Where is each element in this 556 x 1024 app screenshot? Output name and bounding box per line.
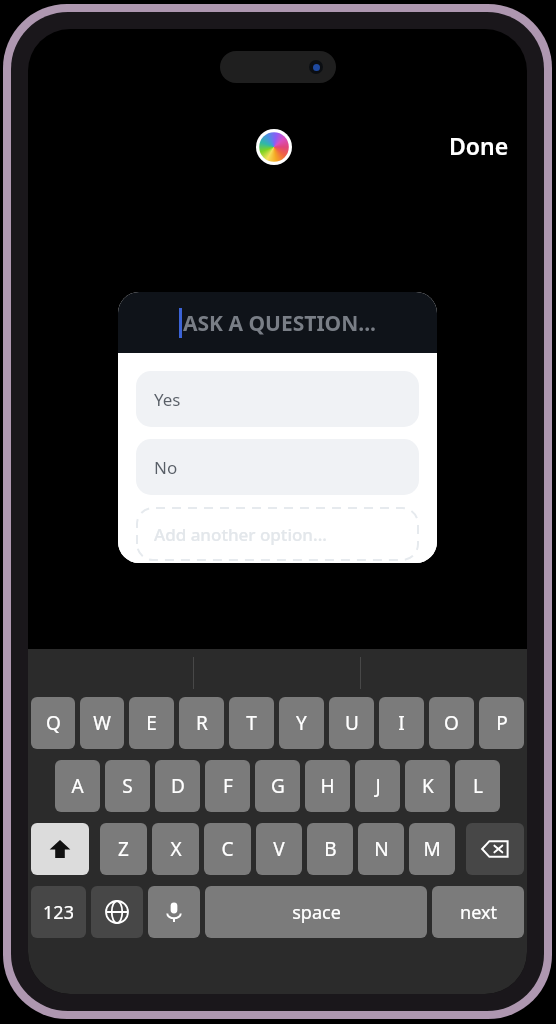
staticText: J bbox=[375, 773, 381, 799]
button[interactable]: Y bbox=[279, 697, 324, 749]
button[interactable]: next bbox=[432, 886, 524, 938]
staticText: T bbox=[246, 710, 257, 736]
button[interactable]: G bbox=[255, 760, 300, 812]
staticText: L bbox=[473, 773, 483, 799]
button[interactable]: Pick color bbox=[256, 129, 292, 165]
staticText: W bbox=[93, 710, 111, 736]
button[interactable]: F bbox=[205, 760, 250, 812]
staticText: S bbox=[122, 773, 133, 799]
button[interactable]: B bbox=[307, 823, 353, 875]
staticText: B bbox=[324, 836, 337, 862]
staticText: P bbox=[496, 710, 508, 736]
staticText: N bbox=[374, 836, 389, 862]
button[interactable]: Z bbox=[100, 823, 147, 875]
button[interactable]: E bbox=[129, 697, 174, 749]
button[interactable]: space bbox=[205, 886, 427, 938]
staticText: X bbox=[170, 836, 182, 862]
button[interactable]: Change keyboard bbox=[91, 886, 143, 938]
staticText: Add another option... bbox=[154, 523, 327, 546]
button[interactable]: O bbox=[429, 697, 474, 749]
staticText: Yes bbox=[154, 388, 181, 411]
staticText: V bbox=[273, 836, 285, 862]
staticText: I bbox=[398, 710, 405, 736]
button[interactable]: P bbox=[479, 697, 524, 749]
button[interactable]: R bbox=[179, 697, 224, 749]
staticText: Done bbox=[449, 130, 509, 161]
staticText: E bbox=[146, 710, 157, 736]
staticText: U bbox=[345, 710, 359, 736]
staticText: D bbox=[171, 773, 185, 799]
staticText: C bbox=[221, 836, 234, 862]
button[interactable]: K bbox=[405, 760, 450, 812]
staticText: M bbox=[423, 836, 441, 862]
staticText: next bbox=[460, 900, 497, 925]
staticText: No bbox=[154, 456, 178, 479]
button[interactable]: ASK A QUESTION... bbox=[118, 292, 437, 353]
button[interactable]: M bbox=[409, 823, 455, 875]
staticText: H bbox=[320, 773, 335, 799]
button[interactable]: Backspace bbox=[466, 823, 524, 875]
button[interactable]: Done bbox=[441, 127, 517, 164]
button[interactable]: T bbox=[229, 697, 274, 749]
button[interactable]: W bbox=[80, 697, 124, 749]
button[interactable]: D bbox=[155, 760, 200, 812]
button[interactable]: X bbox=[152, 823, 199, 875]
button[interactable]: J bbox=[355, 760, 400, 812]
staticText: K bbox=[422, 773, 434, 799]
staticText: F bbox=[223, 773, 233, 799]
button[interactable]: Q bbox=[31, 697, 75, 749]
staticText: A bbox=[71, 773, 84, 799]
staticText: Q bbox=[46, 710, 61, 736]
staticText: O bbox=[444, 710, 459, 736]
staticText: Z bbox=[118, 836, 129, 862]
button[interactable]: L bbox=[455, 760, 500, 812]
button[interactable]: Voice input bbox=[148, 886, 200, 938]
staticText: 123 bbox=[43, 900, 74, 925]
button[interactable]: C bbox=[204, 823, 251, 875]
button[interactable]: A bbox=[55, 760, 100, 812]
staticText: ASK A QUESTION... bbox=[183, 309, 376, 338]
staticText: Y bbox=[296, 710, 307, 736]
button[interactable]: No bbox=[136, 439, 419, 495]
staticText: G bbox=[271, 773, 285, 799]
button[interactable]: I bbox=[379, 697, 424, 749]
button[interactable]: 123 bbox=[31, 886, 86, 938]
button[interactable]: Shift bbox=[31, 823, 89, 875]
staticText: R bbox=[196, 710, 208, 736]
button[interactable]: S bbox=[105, 760, 150, 812]
button[interactable]: Add another option... bbox=[136, 507, 419, 561]
button[interactable]: V bbox=[256, 823, 302, 875]
button[interactable]: U bbox=[329, 697, 374, 749]
button[interactable]: Yes bbox=[136, 371, 419, 427]
staticText: space bbox=[292, 900, 341, 925]
button[interactable]: N bbox=[358, 823, 404, 875]
button[interactable]: H bbox=[305, 760, 350, 812]
